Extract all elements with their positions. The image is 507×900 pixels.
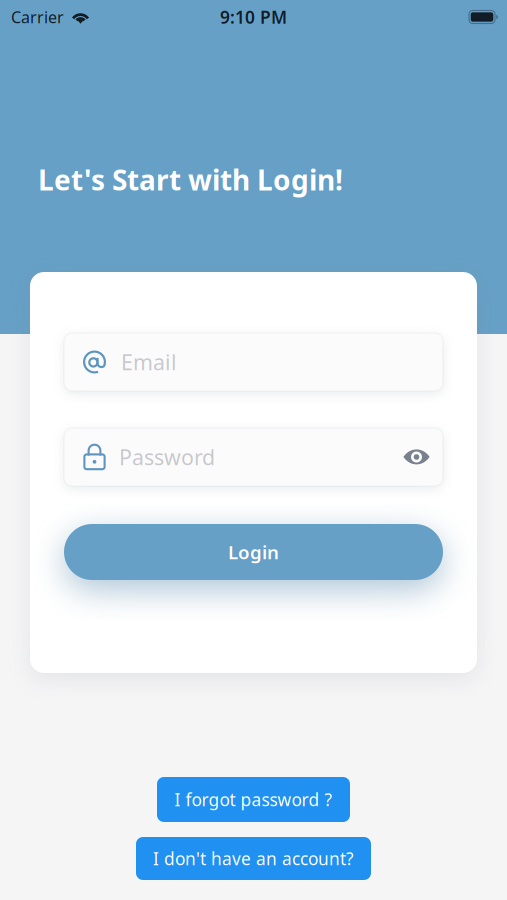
staticText: Login [228,540,279,564]
button[interactable]: Email [64,333,443,391]
staticText: I don't have an account? [153,847,354,870]
button[interactable]: I don't have an account? [136,837,371,880]
staticText: Let's Start with Login! [38,161,343,198]
staticText: 9:10 PM [220,5,287,28]
button[interactable]: Login [64,524,443,580]
button[interactable]: Password [64,428,443,486]
staticText: Password [119,443,215,471]
staticText: Carrier [11,6,64,28]
button[interactable]: Show password [394,438,439,475]
button[interactable]: I forgot password ? [157,777,350,822]
staticText: Email [121,348,177,376]
staticText: I forgot password ? [174,788,332,811]
